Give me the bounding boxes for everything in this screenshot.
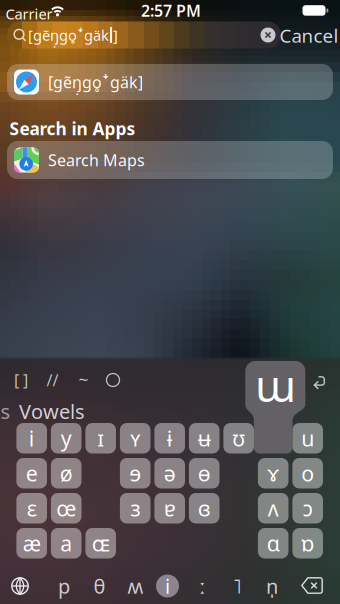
staticText: ɤ — [268, 459, 279, 487]
staticText: ʊ — [232, 424, 245, 452]
button[interactable]: æ — [16, 528, 47, 558]
button[interactable]: ˥ — [233, 573, 241, 599]
staticText: Vowels — [19, 398, 85, 425]
staticText: i — [29, 424, 35, 452]
button[interactable]: ~ — [78, 368, 88, 391]
staticText: s — [0, 398, 10, 425]
staticText: ʌ — [268, 494, 279, 522]
button[interactable]: [gẽŋ̣go̥ꜜgäk] — [7, 64, 333, 100]
staticText: // — [46, 369, 58, 391]
staticText: ɒ — [301, 529, 314, 557]
button[interactable]: Cancel — [279, 23, 338, 48]
staticText: ɪ — [97, 424, 104, 452]
button[interactable]: ʌ — [258, 493, 288, 523]
button[interactable]: e — [16, 458, 47, 488]
button[interactable]: ː — [199, 573, 205, 599]
button[interactable]: y — [51, 423, 81, 453]
button[interactable]: Vowels — [19, 398, 85, 425]
staticText: Carrier — [5, 4, 52, 23]
staticText: y — [61, 424, 72, 452]
button[interactable]: // — [46, 369, 58, 391]
button[interactable]: p — [58, 573, 70, 599]
button[interactable]: [ ] — [14, 369, 28, 391]
staticText: ɨ — [167, 424, 173, 452]
staticText: a — [60, 529, 72, 557]
staticText: ɵ — [198, 459, 211, 487]
staticText: o — [301, 459, 314, 487]
staticText: 2:57 PM — [141, 0, 201, 21]
staticText: ˥ — [233, 573, 241, 599]
button[interactable]: ʊ — [223, 423, 254, 453]
staticText: ~ — [78, 368, 88, 391]
button[interactable]: i — [16, 423, 47, 453]
staticText: ʉ — [198, 424, 211, 452]
button[interactable]: θ — [93, 573, 105, 599]
staticText: Search in Apps — [9, 117, 135, 140]
button[interactable]: ɜ — [120, 493, 150, 523]
button[interactable]: Clear text — [260, 27, 275, 42]
staticText: n̩ — [266, 573, 278, 599]
button[interactable]: ɑ — [258, 528, 288, 558]
staticText: ʏ — [130, 424, 140, 452]
staticText: ɛ — [27, 494, 37, 522]
staticText: ɞ — [198, 494, 211, 522]
staticText: œ — [56, 494, 76, 522]
staticText: u — [301, 424, 314, 452]
button[interactable]: ɘ — [120, 458, 150, 488]
staticText: [gẽŋ̣go̥ꜜgäk — [28, 25, 109, 45]
staticText: ø — [60, 459, 73, 487]
button[interactable]: ɔ — [292, 493, 323, 523]
staticText: [ ] — [14, 369, 28, 391]
staticText: [gẽŋ̣go̥ꜜgäk] — [48, 71, 143, 93]
staticText: Search Maps — [48, 149, 145, 171]
button[interactable]: ɞ — [189, 493, 219, 523]
button[interactable]: ʏ — [120, 423, 150, 453]
button[interactable]: ɛ — [16, 493, 47, 523]
staticText: ɐ — [164, 494, 176, 522]
staticText: i — [165, 573, 170, 599]
staticText: p — [58, 573, 70, 599]
button[interactable]: Next keyboard — [10, 576, 30, 596]
staticText: ɑ — [267, 529, 280, 557]
staticText: ː — [199, 573, 205, 599]
button[interactable]: ʍ — [127, 573, 143, 599]
button[interactable]: ʉ — [189, 423, 219, 453]
button[interactable]: Delete — [301, 577, 323, 594]
staticText: e — [26, 459, 38, 487]
button[interactable]: ø — [51, 458, 81, 488]
button[interactable]: Return — [310, 372, 330, 392]
staticText: ɔ — [303, 494, 313, 522]
staticText: θ — [93, 573, 105, 599]
staticText: ] — [113, 25, 118, 45]
staticText: ɯ — [255, 356, 296, 414]
button[interactable]: i — [156, 574, 179, 597]
staticText: ʍ — [127, 573, 143, 599]
button[interactable]: a — [51, 528, 81, 558]
staticText: ɜ — [130, 494, 140, 522]
button[interactable]: ɨ — [154, 423, 185, 453]
button[interactable]: Tones — [106, 373, 119, 386]
staticText: Cancel — [279, 23, 338, 48]
staticText: ɶ — [92, 529, 110, 557]
button[interactable]: ə — [154, 458, 185, 488]
button[interactable]: ɵ — [189, 458, 219, 488]
button[interactable]: u — [292, 423, 323, 453]
button[interactable]: ɐ — [154, 493, 185, 523]
button[interactable]: o — [292, 458, 323, 488]
button[interactable]: ɪ — [85, 423, 116, 453]
button[interactable]: Search Maps — [7, 141, 333, 179]
button[interactable]: œ — [51, 493, 81, 523]
button[interactable]: ɒ — [292, 528, 323, 558]
staticText: ɘ — [129, 459, 141, 487]
button[interactable]: n̩ — [266, 573, 278, 599]
button[interactable]: ɶ — [85, 528, 116, 558]
staticText: æ — [23, 529, 41, 557]
button[interactable]: ɯ — [0, 0, 340, 604]
staticText: ə — [164, 459, 176, 487]
button[interactable]: ɤ — [258, 458, 288, 488]
